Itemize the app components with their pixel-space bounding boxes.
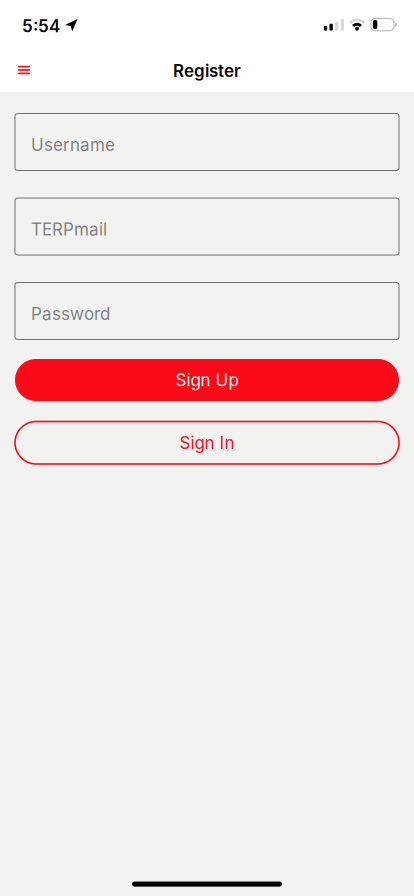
staticText: Sign Up xyxy=(175,370,238,390)
staticText: Register xyxy=(173,61,241,81)
staticText: TERPmail xyxy=(31,219,107,240)
staticText: Password xyxy=(31,303,110,324)
button[interactable]: Menu xyxy=(0,48,42,92)
button[interactable]: Password xyxy=(15,282,399,339)
button[interactable]: Username xyxy=(15,113,399,170)
button[interactable]: TERPmail xyxy=(15,198,399,255)
staticText: Sign In xyxy=(179,432,234,453)
staticText: Username xyxy=(31,134,115,155)
staticText: 5:54 xyxy=(22,16,60,36)
button[interactable]: Sign Up xyxy=(15,359,399,401)
button[interactable]: Sign In xyxy=(15,421,399,464)
